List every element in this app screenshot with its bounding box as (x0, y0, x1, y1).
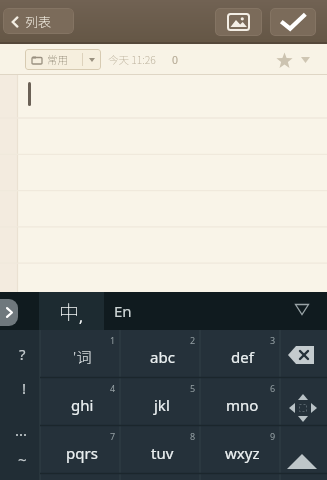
staticText: ... (15, 420, 28, 440)
button[interactable] (295, 304, 309, 315)
staticText: 2 (190, 334, 196, 346)
button[interactable]: ... (4, 415, 38, 445)
staticText: abc (150, 347, 175, 367)
button[interactable] (0, 299, 18, 326)
staticText: 中 (59, 297, 79, 326)
staticText: 7 (110, 430, 116, 442)
button[interactable] (0, 75, 327, 292)
button[interactable]: pqrs (40, 426, 120, 474)
staticText: 0 (172, 53, 179, 67)
staticText: wxyz (225, 443, 260, 463)
staticText: 4 (110, 382, 116, 394)
staticText: mno (226, 395, 259, 415)
button[interactable] (270, 8, 316, 36)
staticText: 8 (190, 430, 196, 442)
button[interactable]: ~ (5, 444, 39, 474)
button[interactable]: 中 (39, 292, 104, 330)
button[interactable]: wxyz (200, 426, 280, 474)
button[interactable]: tuv (120, 426, 200, 474)
staticText: 1 (110, 334, 116, 346)
button[interactable] (215, 8, 262, 36)
button[interactable]: abc (120, 330, 200, 378)
button[interactable]: '词 (40, 330, 120, 378)
staticText: '词 (73, 346, 92, 368)
button[interactable]: def (200, 330, 280, 378)
staticText: En (114, 301, 132, 321)
staticText: 6 (270, 382, 276, 394)
staticText: tuv (151, 443, 174, 463)
staticText: 3 (270, 334, 276, 346)
staticText: 列表 (25, 12, 52, 31)
staticText: 9 (270, 430, 276, 442)
staticText: 今天 11:26 (108, 52, 156, 67)
button[interactable]: En (100, 292, 146, 330)
staticText: jkl (154, 395, 170, 415)
button[interactable]: ! (7, 373, 41, 403)
button[interactable]: jkl (120, 378, 200, 426)
button[interactable] (301, 57, 310, 63)
staticText: 5 (190, 382, 196, 394)
button[interactable]: ghi (40, 378, 120, 426)
button[interactable] (276, 52, 293, 69)
staticText: ~ (18, 449, 27, 469)
staticText: ghi (71, 395, 94, 415)
staticText: ? (19, 344, 26, 364)
button[interactable]: 常用 (25, 49, 101, 70)
staticText: ! (22, 378, 27, 398)
staticText: def (231, 347, 254, 367)
button[interactable]: 列表 (3, 8, 74, 34)
staticText: , (79, 306, 84, 326)
staticText: pqrs (66, 443, 98, 463)
button[interactable]: ? (5, 339, 39, 369)
staticText: 常用 (47, 52, 68, 67)
button[interactable]: mno (200, 378, 280, 426)
